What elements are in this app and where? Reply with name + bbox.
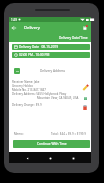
staticText: Continue With Time	[37, 142, 67, 146]
staticText: 1:29	[11, 18, 17, 22]
button[interactable]: Edit	[82, 84, 89, 91]
staticText: Delivery Charge : $9.9	[12, 103, 42, 107]
staticText: Delivery Date 08-15-2019	[19, 45, 59, 49]
button[interactable]: Delete	[82, 104, 88, 110]
staticText: Delivery	[24, 25, 40, 31]
staticText: Mobile No. 213-847-1847	[12, 88, 46, 92]
staticText: Total : $44 + $9.9 = $199.9	[51, 132, 86, 136]
staticText: Memo :	[14, 132, 25, 136]
button[interactable]: 02:00 PM - 10:00 PM	[12, 52, 90, 58]
button[interactable]: Back	[9, 22, 19, 34]
staticText: Delivery Address: 5455 Hollybrook Pkwy	[12, 92, 67, 96]
button[interactable]: Recents	[68, 153, 78, 163]
button[interactable]: Home	[45, 153, 55, 163]
button[interactable]: Cart	[79, 22, 90, 34]
staticText: 02:00 PM - 10:00 PM	[19, 53, 50, 57]
button[interactable]: Continue With Time	[13, 140, 90, 148]
button[interactable]: Delivery Date 08-15-2019	[12, 44, 90, 50]
staticText: Delivery Date/Time	[59, 36, 88, 40]
button[interactable]: Back	[22, 153, 32, 163]
staticText: Receiver Name: Jake	[12, 80, 40, 84]
staticText: Mountain View, CA 94045, USA	[37, 96, 79, 100]
staticText: Grocery Holdco	[12, 84, 33, 88]
staticText: Delivery Address	[40, 69, 66, 73]
button[interactable]: Eco	[83, 96, 88, 101]
